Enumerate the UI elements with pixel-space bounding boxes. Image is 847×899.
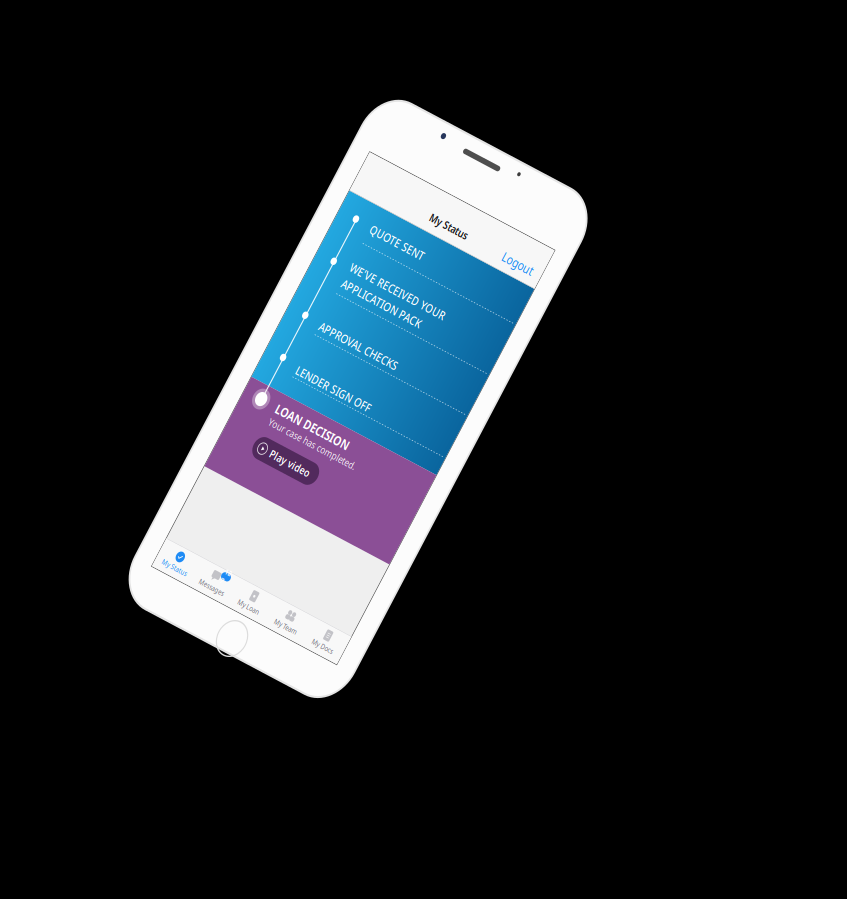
button[interactable]: My Docs <box>300 627 375 661</box>
button[interactable]: My Loan <box>150 627 225 661</box>
button[interactable]: Play video <box>60 428 189 462</box>
staticText: My Docs <box>316 646 358 661</box>
staticText: Your case has completed. <box>65 396 240 415</box>
button[interactable]: My Team <box>225 627 300 661</box>
staticText: My Team <box>240 646 285 661</box>
